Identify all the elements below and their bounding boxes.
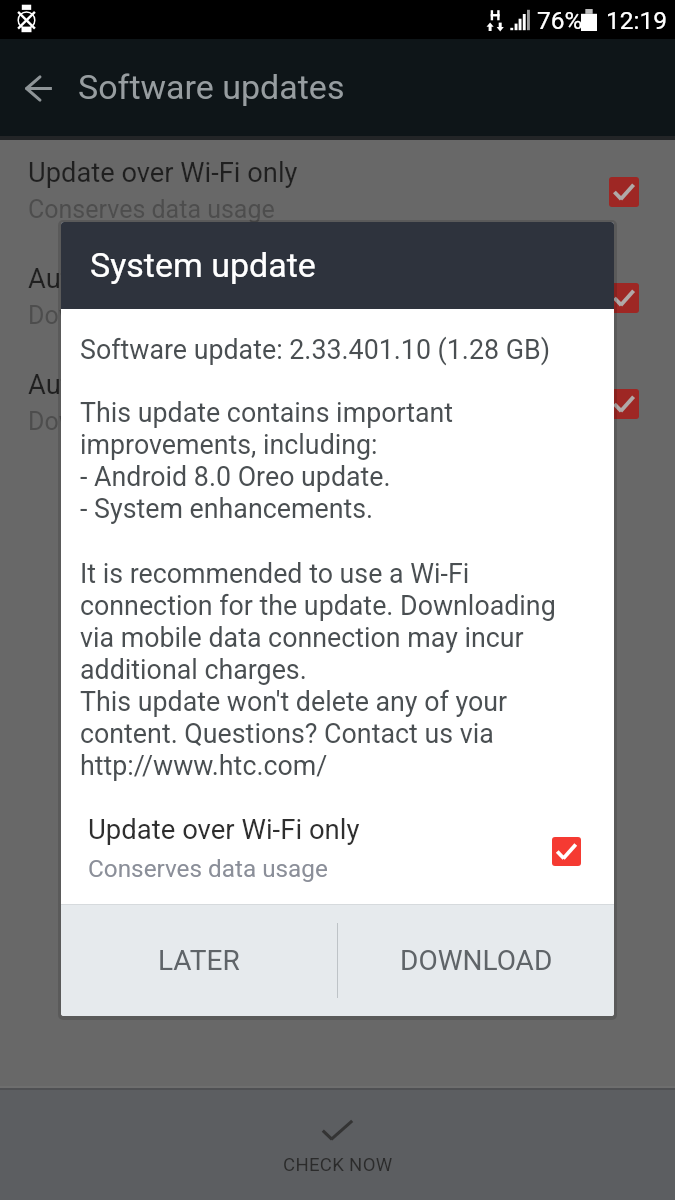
staticText: Update over Wi-Fi only: [28, 153, 298, 189]
staticText: CHECK NOW: [283, 1154, 393, 1176]
button[interactable]: Auto-update system: [0, 362, 675, 440]
staticText: Software updates: [78, 67, 345, 107]
button[interactable]: Update over Wi-Fi only: [80, 809, 602, 885]
staticText: This update contains important: [80, 397, 454, 429]
staticText: 12:19: [606, 6, 668, 35]
button[interactable]: Back: [0, 49, 78, 127]
button[interactable]: Update over Wi-Fi only: [0, 150, 675, 228]
staticText: This update won't delete any of your: [80, 686, 508, 718]
staticText: Auto-download update: [28, 259, 303, 295]
staticText: DOWNLOAD: [400, 944, 553, 977]
staticText: Conserves data usage: [28, 189, 275, 225]
staticText: improvements, including:: [80, 429, 378, 461]
button[interactable]: Auto-download update: [0, 256, 675, 334]
button[interactable]: CHECK NOW: [0, 1090, 675, 1200]
staticText: via mobile data connection may incur: [80, 622, 524, 654]
staticText: additional charges.: [80, 654, 307, 686]
other: Alarm off: [17, 4, 39, 34]
staticText: Software update: 2.33.401.10 (1.28 GB): [80, 334, 550, 366]
staticText: http://www.htc.com/: [80, 750, 328, 782]
staticText: It is recommended to use a Wi-Fi: [80, 558, 470, 590]
staticText: Download over Wi-Fi: [28, 401, 255, 437]
staticText: System update: [90, 245, 316, 285]
button[interactable]: DOWNLOAD: [338, 905, 614, 1016]
staticText: Download over Wi-Fi: [28, 295, 255, 331]
staticText: - System enhancements.: [80, 493, 374, 525]
staticText: Update over Wi-Fi only: [88, 809, 360, 847]
staticText: LATER: [158, 944, 240, 977]
staticText: connection for the update. Downloading: [80, 590, 556, 622]
staticText: content. Questions? Contact us via: [80, 718, 494, 750]
staticText: - Android 8.0 Oreo update.: [80, 461, 391, 493]
staticText: Auto-update system: [28, 365, 272, 401]
staticText: 76%: [537, 6, 583, 35]
button[interactable]: LATER: [61, 905, 337, 1016]
staticText: Conserves data usage: [88, 847, 328, 885]
